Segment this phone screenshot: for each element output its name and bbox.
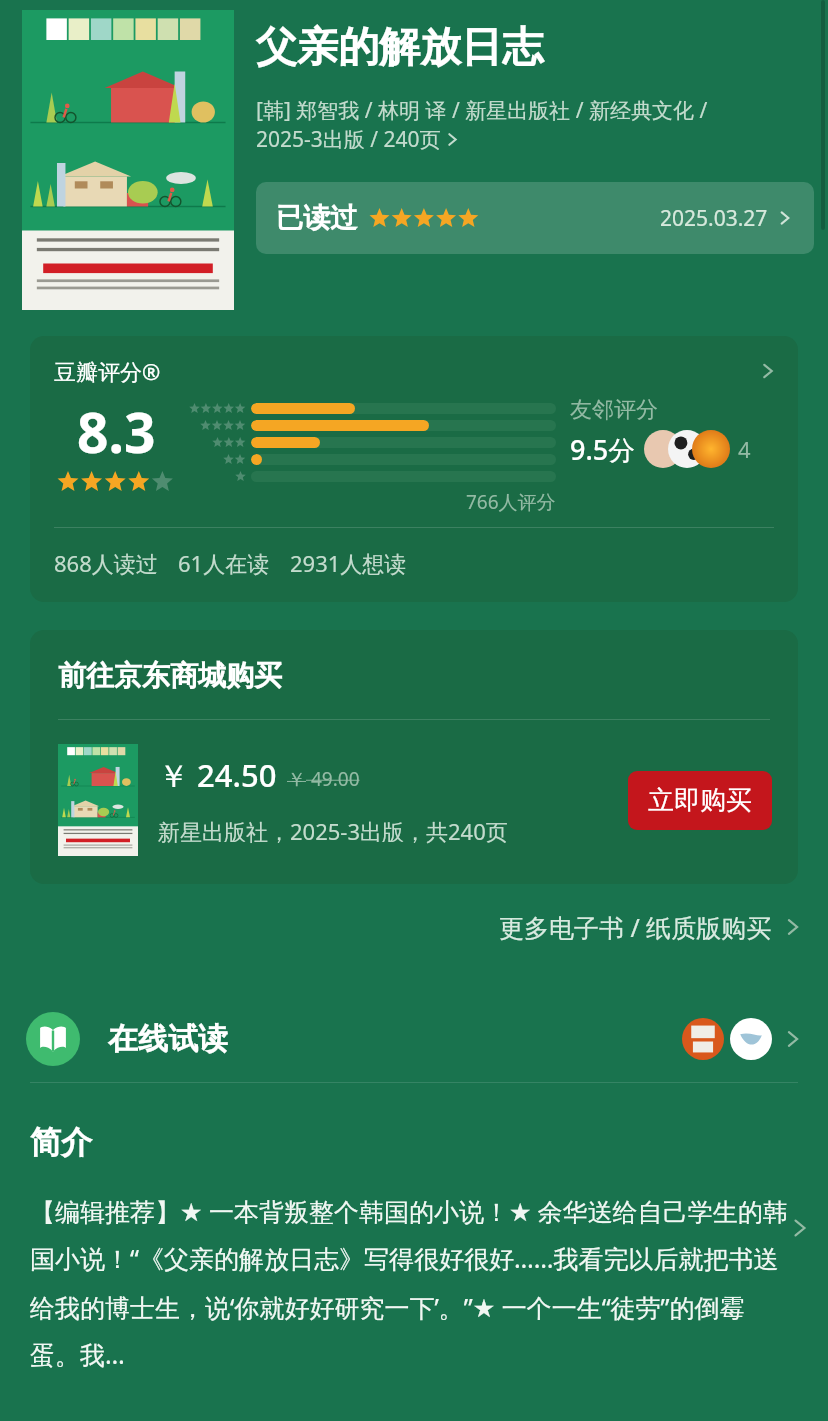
other: 在线试读 bbox=[26, 1012, 80, 1066]
button[interactable]: 立即购买 bbox=[628, 771, 772, 830]
button[interactable]: 更多电子书 / 纸质版购买 bbox=[0, 904, 828, 950]
button[interactable]: 前往京东商城购买 bbox=[30, 630, 798, 719]
staticText: 【编辑推荐】★ 一本背叛整个韩国的小说！★ 余华送给自己学生的韩国小说！“《父亲… bbox=[30, 1194, 788, 1372]
staticText: 简介 bbox=[30, 1123, 92, 1162]
staticText: 更多电子书 / 纸质版购买 bbox=[499, 910, 772, 944]
staticText: 4 bbox=[738, 434, 751, 464]
staticText: 61人在读 bbox=[178, 548, 270, 578]
staticText: 868人读过 bbox=[54, 548, 158, 578]
staticText: 8.3 bbox=[77, 394, 156, 469]
button[interactable]: [韩] 郑智我 / 林明 译 / 新星出版社 / 新经典文化 / bbox=[256, 96, 708, 154]
staticText: [韩] 郑智我 / 林明 译 / 新星出版社 / 新经典文化 / bbox=[256, 96, 708, 125]
button[interactable]: 868人读过 bbox=[30, 528, 798, 602]
staticText: 豆瓣评分® bbox=[54, 356, 161, 386]
staticText: 父亲的解放日志 bbox=[256, 22, 543, 74]
staticText: ￥ 49.00 bbox=[287, 766, 360, 792]
staticText: 9.5分 bbox=[570, 431, 636, 468]
staticText: 766人评分 bbox=[466, 489, 556, 515]
button[interactable]: 简介 bbox=[0, 1123, 828, 1372]
staticText: 友邻评分 bbox=[570, 396, 658, 424]
button[interactable]: 9.5分 bbox=[570, 430, 751, 468]
button[interactable]: 已读过 bbox=[256, 182, 814, 254]
button[interactable]: 豆瓣评分® bbox=[30, 336, 798, 386]
staticText: 已读过 bbox=[276, 201, 357, 235]
staticText: 立即购买 bbox=[648, 784, 752, 817]
staticText: 在线试读 bbox=[108, 1020, 228, 1058]
staticText: 前往京东商城购买 bbox=[58, 658, 282, 693]
button[interactable]: ￥ 24.50 bbox=[30, 720, 798, 884]
staticText: 2025-3出版 / 240页 bbox=[256, 125, 441, 154]
button[interactable]: 在线试读 bbox=[0, 1006, 828, 1082]
staticText: 2931人想读 bbox=[290, 548, 407, 578]
staticText: ￥ 24.50 bbox=[158, 754, 277, 796]
staticText: 新星出版社，2025-3出版，共240页 bbox=[158, 816, 508, 846]
staticText: 2025.03.27 bbox=[660, 204, 768, 233]
